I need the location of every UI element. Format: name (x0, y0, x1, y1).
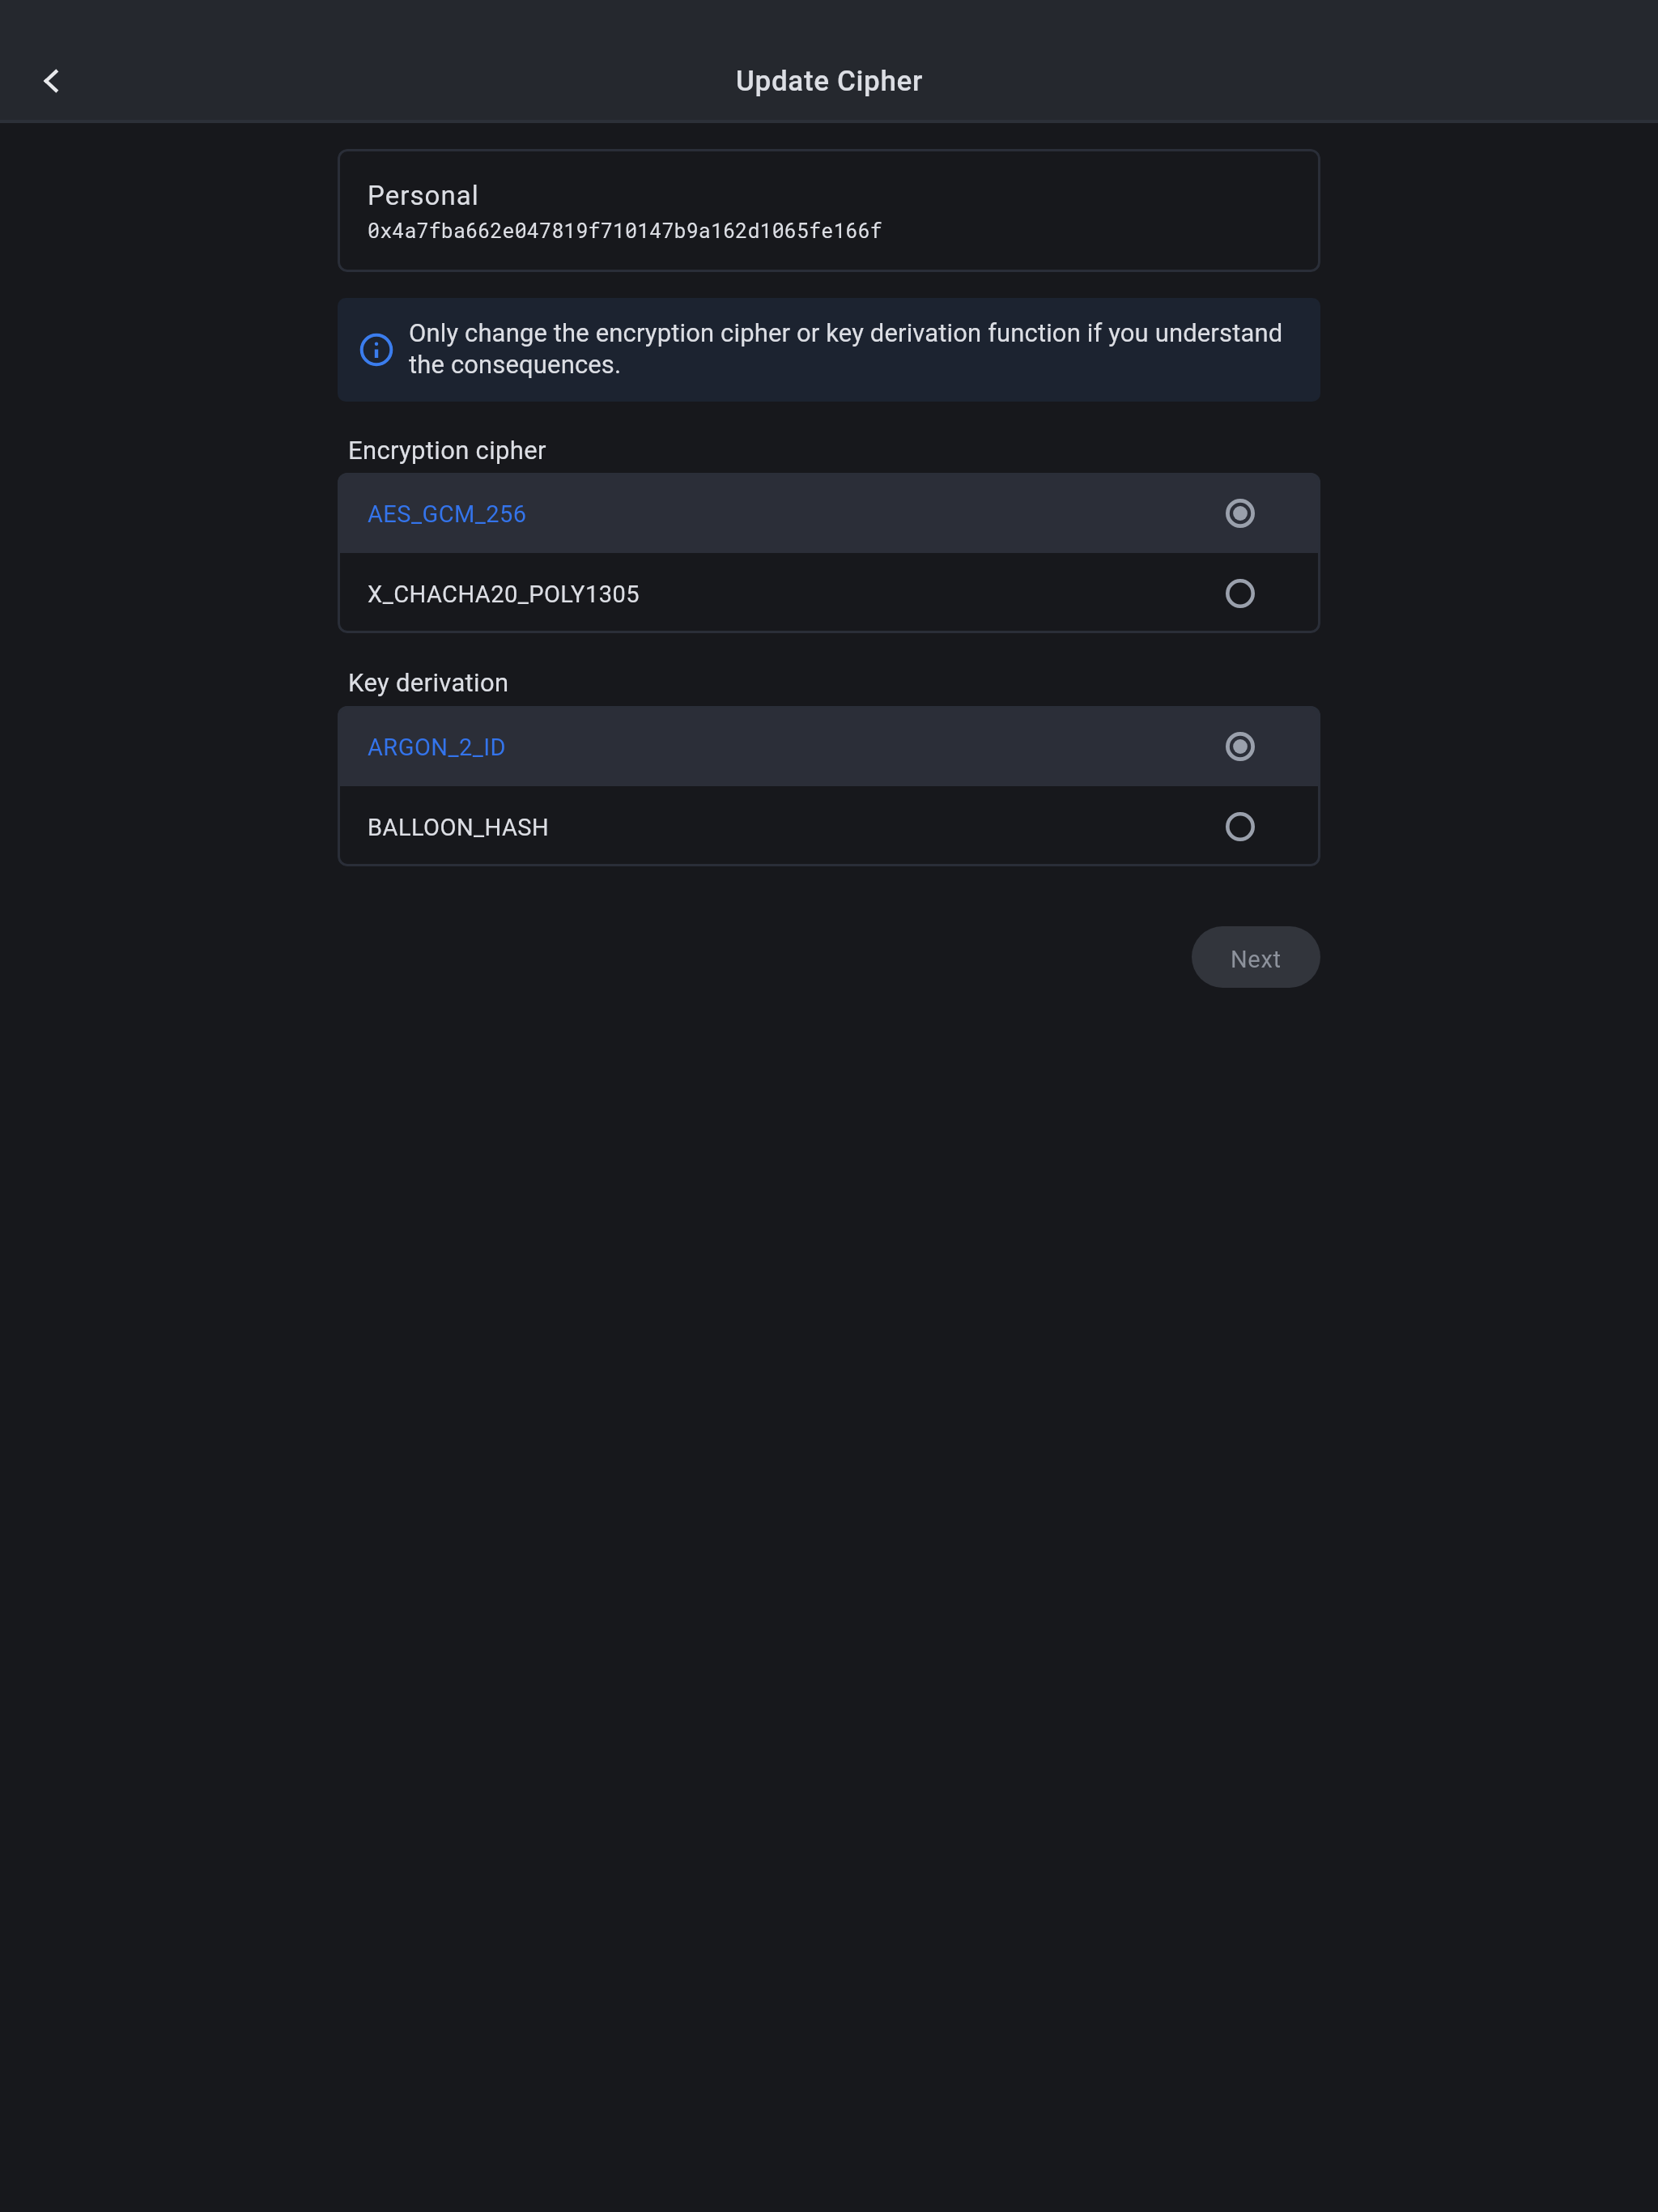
button[interactable]: ARGON_2_ID (338, 706, 1320, 786)
button[interactable]: AES_GCM_256 (338, 473, 1320, 553)
staticText: Personal (368, 180, 479, 211)
staticText: Only change the encryption cipher or key… (409, 318, 1283, 379)
staticText: AES_GCM_256 (368, 500, 527, 528)
button[interactable]: Back (12, 42, 90, 120)
button[interactable]: Next (1192, 926, 1320, 988)
button[interactable]: BALLOON_HASH (338, 786, 1320, 866)
staticText: 0x4a7fba662e047819f710147b9a162d1065fe16… (368, 217, 882, 244)
staticText: BALLOON_HASH (368, 814, 550, 841)
staticText: ARGON_2_ID (368, 734, 507, 761)
staticText: Update Cipher (736, 65, 923, 98)
button[interactable]: X_CHACHA20_POLY1305 (338, 553, 1320, 633)
staticText: Next (1231, 946, 1282, 973)
staticText: Encryption cipher (348, 436, 546, 465)
staticText: Key derivation (348, 668, 509, 697)
staticText: X_CHACHA20_POLY1305 (368, 581, 640, 608)
